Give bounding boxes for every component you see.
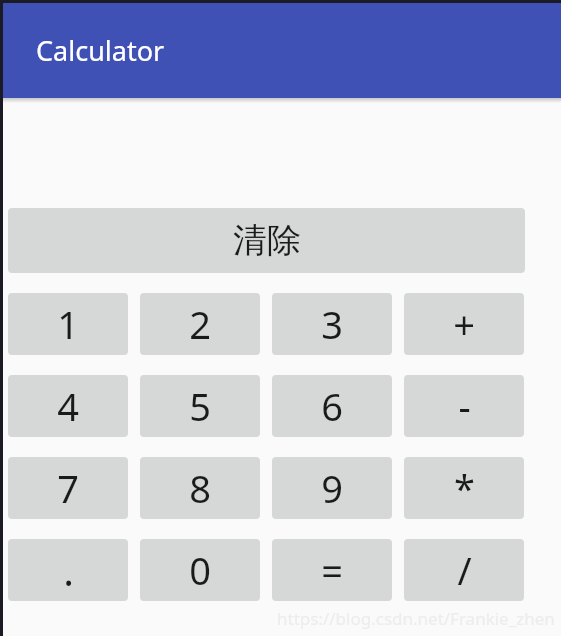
button[interactable]: 4 [8,375,128,437]
staticText: 5 [189,380,211,432]
button[interactable]: = [272,539,392,601]
staticText: * [454,462,475,514]
staticText: https://blog.csdn.net/Frankie_zhen [277,607,555,630]
staticText: Calculator [36,32,165,69]
staticText: 6 [321,380,343,432]
button[interactable]: 1 [8,293,128,355]
staticText: 2 [189,298,211,350]
staticText: 1 [57,298,79,350]
button[interactable]: + [404,293,524,355]
button[interactable]: 清除 [8,208,525,273]
button[interactable]: 2 [140,293,260,355]
staticText: = [321,544,343,596]
staticText: 4 [57,380,79,432]
button[interactable]: 9 [272,457,392,519]
button[interactable]: . [8,539,128,601]
button[interactable]: 0 [140,539,260,601]
staticText: + [453,298,475,350]
staticText: 3 [321,298,343,350]
button[interactable]: 6 [272,375,392,437]
staticText: 7 [57,462,79,514]
button[interactable]: 5 [140,375,260,437]
staticText: / [457,544,472,596]
button[interactable]: / [404,539,524,601]
button[interactable]: 8 [140,457,260,519]
staticText: . [63,543,74,597]
staticText: 0 [189,544,211,596]
button[interactable]: - [404,375,524,437]
button[interactable]: 7 [8,457,128,519]
staticText: 清除 [233,219,301,262]
button[interactable]: 3 [272,293,392,355]
button[interactable]: * [404,457,524,519]
staticText: 9 [321,462,343,514]
staticText: 8 [189,462,211,514]
staticText: - [458,380,471,432]
